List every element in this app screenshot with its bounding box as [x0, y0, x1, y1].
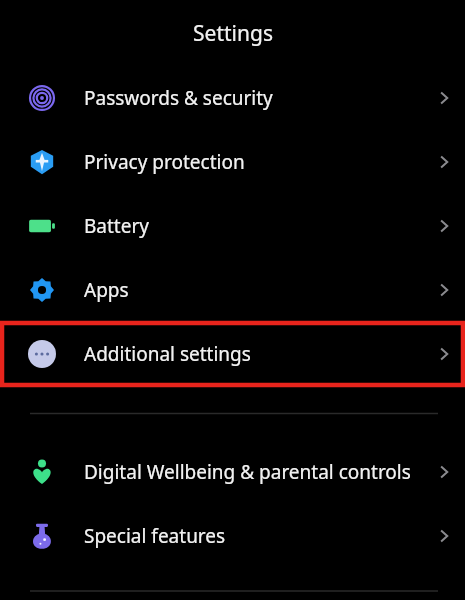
button[interactable]: Passwords & security — [0, 66, 465, 130]
staticText: Passwords & security — [84, 85, 423, 111]
staticText: Special features — [84, 523, 423, 549]
staticText: Digital Wellbeing & parental controls — [84, 459, 423, 485]
staticText: Privacy protection — [84, 149, 423, 175]
staticText: Additional settings — [84, 341, 423, 367]
staticText: Apps — [84, 277, 423, 303]
button[interactable]: Privacy protection — [0, 130, 465, 194]
button[interactable]: Special features — [0, 504, 465, 568]
button[interactable]: Additional settings — [0, 322, 465, 386]
staticText: Settings — [193, 19, 273, 48]
button[interactable]: Apps — [0, 258, 465, 322]
staticText: Battery — [84, 213, 423, 239]
button[interactable]: Digital Wellbeing & parental controls — [0, 440, 465, 504]
button[interactable]: Battery — [0, 194, 465, 258]
